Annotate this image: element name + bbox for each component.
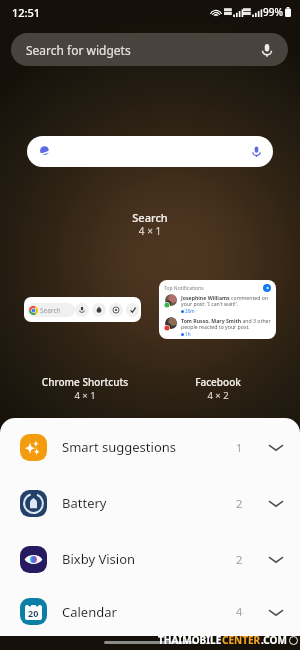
staticText: Bixby Vision bbox=[62, 550, 136, 568]
other: Shortcut bbox=[126, 303, 139, 317]
other: Voice search bbox=[250, 145, 263, 158]
staticText: 12:51 bbox=[12, 5, 41, 20]
button[interactable]: Voice search bbox=[27, 136, 273, 167]
button[interactable]: Top Notifications bbox=[159, 280, 276, 339]
staticText: 1 bbox=[236, 440, 243, 455]
staticText: 4 × 1 bbox=[0, 389, 235, 402]
staticText: 99% bbox=[263, 5, 283, 19]
button[interactable]: Search for widgets bbox=[11, 33, 288, 66]
button[interactable]: 20 bbox=[0, 587, 300, 636]
staticText: Chrome Shortcuts bbox=[0, 375, 235, 389]
staticText: 2 bbox=[236, 496, 243, 511]
staticText: Facebook bbox=[68, 375, 300, 389]
staticText: THAIMOBILE bbox=[158, 633, 222, 647]
other: Voice search bbox=[259, 42, 275, 58]
staticText: 1h bbox=[185, 331, 191, 337]
other: Shortcut bbox=[109, 303, 123, 317]
button[interactable]: Smart suggestions bbox=[0, 419, 300, 475]
other: Shortcut bbox=[75, 303, 89, 317]
button[interactable]: Bixby Vision bbox=[0, 531, 300, 587]
button[interactable]: Battery bbox=[0, 475, 300, 531]
staticText: Smart suggestions bbox=[62, 438, 177, 456]
staticText: Top Notifications bbox=[164, 285, 204, 292]
staticText: CENTER bbox=[222, 633, 261, 647]
staticText: .COM bbox=[261, 633, 287, 647]
other: Shortcut bbox=[92, 303, 106, 317]
staticText: Battery bbox=[62, 494, 107, 512]
staticText: Tom Russo, Mary Smith and 3 other people… bbox=[181, 317, 271, 331]
staticText: Search bbox=[0, 210, 300, 225]
staticText: 4 × 2 bbox=[68, 389, 300, 402]
staticText: 20m bbox=[185, 308, 195, 314]
staticText: 2 bbox=[236, 552, 243, 567]
staticText: Calendar bbox=[62, 603, 117, 621]
staticText: Search bbox=[40, 306, 61, 315]
staticText: 4 × 1 bbox=[0, 224, 300, 238]
staticText: 4 bbox=[236, 604, 243, 619]
staticText: Josephine Williams commented on your pos… bbox=[181, 294, 271, 308]
staticText: Search for widgets bbox=[26, 42, 131, 58]
button[interactable]: Search bbox=[24, 297, 141, 322]
staticText: 20 bbox=[28, 607, 39, 619]
